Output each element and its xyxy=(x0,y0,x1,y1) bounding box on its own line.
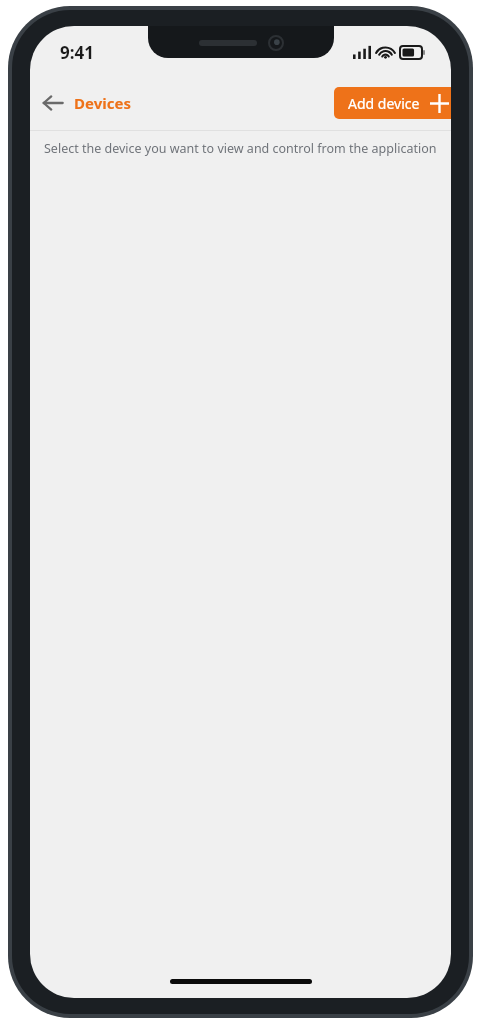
button[interactable]: Back xyxy=(30,86,137,120)
staticText: Devices xyxy=(74,93,131,113)
staticText: Select the device you want to view and c… xyxy=(44,140,437,157)
button[interactable]: Add device xyxy=(334,87,451,119)
staticText: 9:41 xyxy=(60,41,94,64)
other: Back xyxy=(42,92,64,114)
staticText: Add device xyxy=(348,94,420,113)
